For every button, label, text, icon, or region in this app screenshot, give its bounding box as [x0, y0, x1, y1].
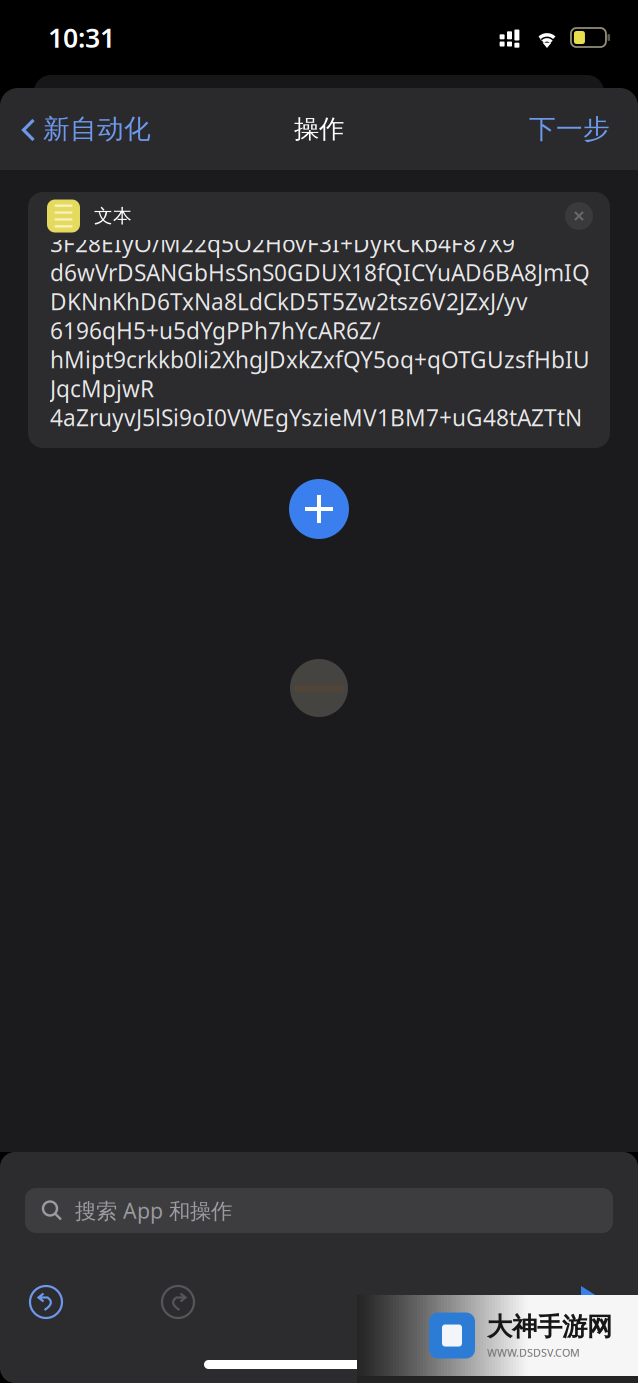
button[interactable]: Undo	[0, 1275, 63, 1329]
staticText: d6wVrDSANGbHsSnS0GDUX18fQICYuAD6BA8JmIQ	[50, 257, 590, 287]
button[interactable]: 搜索 App 和操作	[25, 1188, 613, 1233]
staticText: DKNnKhD6TxNa8LdCkD5T5Zw2tsz6V2JZxJ/yv	[50, 286, 528, 316]
button[interactable]: 新自动化	[0, 99, 151, 159]
button[interactable]: Redo	[161, 1275, 195, 1329]
staticText: 大神手游网	[487, 1311, 612, 1342]
button[interactable]: Add action	[283, 473, 355, 545]
staticText: 操作	[294, 113, 344, 144]
staticText: 10:31	[48, 20, 115, 55]
staticText: 搜索 App 和操作	[75, 1196, 232, 1225]
staticText: 6196qH5+u5dYgPPh7hYcAR6Z/	[50, 315, 380, 345]
staticText: WWW.DSDSV.COM	[487, 1345, 580, 1360]
staticText: hMipt9crkkb0li2XhgJDxkZxfQY5oq+qOTGUzsfH…	[50, 344, 590, 374]
staticText: JqcMpjwR	[50, 373, 154, 403]
button[interactable]: Remove action	[557, 194, 601, 238]
button[interactable]: Run shortcut	[578, 1274, 638, 1330]
staticText: 3F28EIyO/M22q5O2HovF3I+DyRCKb4F87X9	[50, 228, 515, 258]
button[interactable]: 下一步	[529, 99, 638, 159]
staticText: 4aZruyvJ5lSi9oI0VWEgYszieMV1BM7+uG48tAZT…	[50, 402, 582, 432]
staticText: 文本	[94, 204, 132, 227]
staticText: 新自动化	[43, 113, 151, 145]
staticText: 下一步	[529, 113, 610, 145]
